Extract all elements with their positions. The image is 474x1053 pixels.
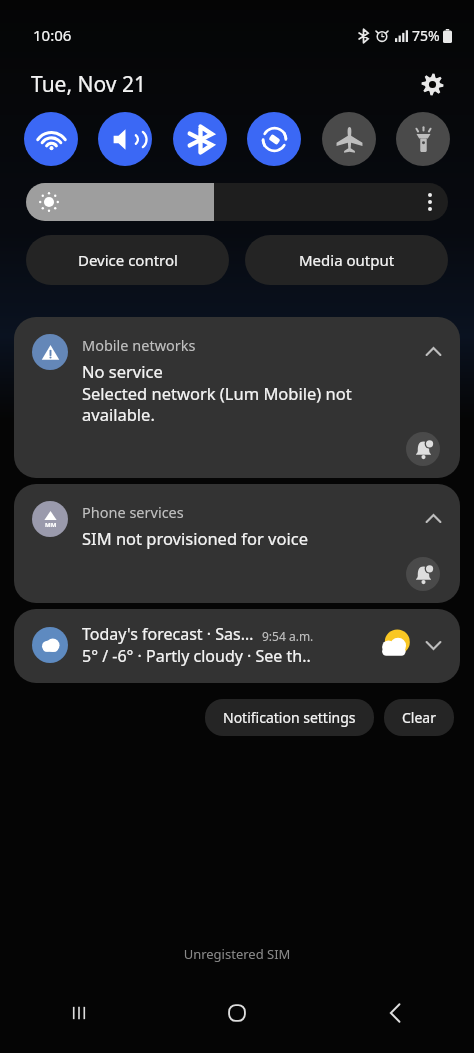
- button[interactable]: Mobile networks: [14, 317, 460, 478]
- staticText: Media output: [299, 250, 395, 270]
- button[interactable]: Bluetooth: [173, 112, 227, 166]
- staticText: Notification settings: [223, 708, 356, 727]
- staticText: Mobile networks: [82, 335, 196, 355]
- staticText: Clear: [402, 708, 436, 727]
- button[interactable]: Clear: [384, 699, 454, 736]
- button[interactable]: Device control: [26, 235, 229, 285]
- staticText: 10:06: [33, 25, 72, 45]
- button[interactable]: Settings: [412, 64, 452, 104]
- button[interactable]: Snooze notification: [406, 432, 440, 466]
- staticText: Phone services: [82, 502, 184, 522]
- staticText: MM: [45, 521, 57, 529]
- staticText: 5° / -6° · Partly cloudy · See th..: [82, 645, 311, 667]
- button[interactable]: Today's forecast · Sas…: [14, 609, 460, 683]
- button[interactable]: Brightness: [26, 183, 448, 221]
- button[interactable]: Media output: [245, 235, 448, 285]
- staticText: Selected network (Lum Mobile) not availa…: [82, 382, 420, 426]
- button[interactable]: Home: [158, 989, 316, 1037]
- button[interactable]: Sound: [98, 112, 152, 166]
- button[interactable]: Flashlight: [396, 112, 450, 166]
- button[interactable]: Wi-Fi: [24, 112, 78, 166]
- button[interactable]: MM: [14, 484, 460, 603]
- staticText: 9:54 a.m.: [262, 628, 314, 644]
- button[interactable]: Auto rotate: [247, 112, 301, 166]
- staticText: SIM not provisioned for voice: [82, 527, 308, 549]
- button[interactable]: Airplane mode: [322, 112, 376, 166]
- staticText: Device control: [78, 250, 178, 270]
- button[interactable]: Collapse: [420, 338, 446, 364]
- staticText: Unregistered SIM: [0, 945, 474, 963]
- button[interactable]: Expand: [420, 632, 446, 658]
- staticText: 75%: [412, 26, 440, 45]
- button[interactable]: Back: [316, 989, 474, 1037]
- button[interactable]: Recent apps: [0, 989, 158, 1037]
- staticText: Today's forecast · Sas…: [82, 623, 254, 645]
- button[interactable]: Notification settings: [205, 699, 374, 736]
- button[interactable]: Collapse: [420, 505, 446, 531]
- staticText: No service: [82, 360, 163, 382]
- button[interactable]: Snooze notification: [406, 557, 440, 591]
- staticText: Tue, Nov 21: [31, 70, 146, 99]
